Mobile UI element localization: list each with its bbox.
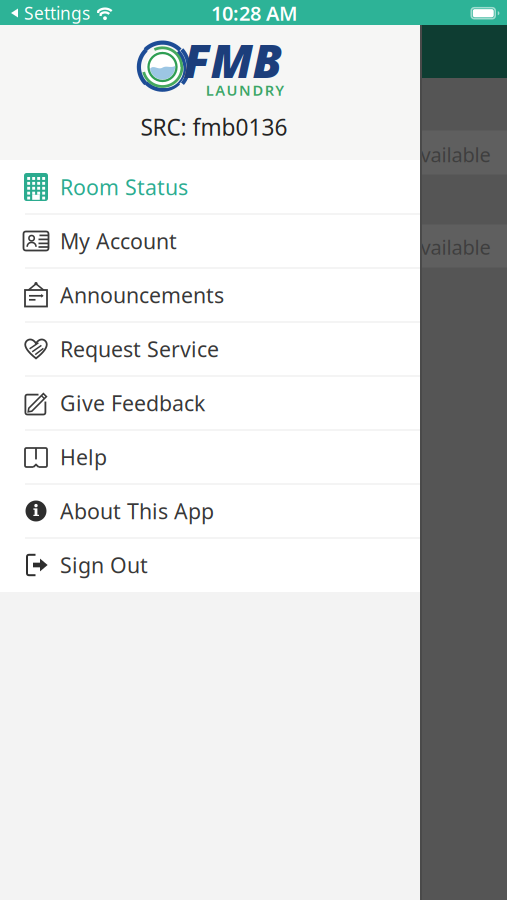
staticText: Room Status	[60, 173, 188, 201]
staticText: L	[206, 80, 214, 100]
staticText: SRC: fmb0136	[140, 112, 287, 142]
staticText: Sign Out	[60, 551, 148, 579]
button[interactable]: My Account	[0, 214, 420, 268]
button[interactable]: Room Status	[0, 160, 420, 214]
button[interactable]: Help	[0, 430, 420, 484]
staticText: Available	[407, 141, 490, 168]
staticText: About This App	[60, 497, 214, 525]
button[interactable]: Request Service	[0, 322, 420, 376]
staticText: Give Feedback	[60, 389, 205, 417]
button[interactable]: Give Feedback	[0, 376, 420, 430]
staticText: Y	[275, 80, 284, 100]
staticText: FMB	[183, 29, 282, 91]
button[interactable]: Sign Out	[0, 538, 420, 592]
button[interactable]: Close menu	[420, 25, 507, 900]
staticText: U	[227, 80, 238, 100]
staticText: Settings	[24, 1, 90, 24]
staticText: Help	[60, 443, 107, 471]
staticText: A	[215, 80, 225, 100]
staticText: 10:28 AM	[211, 0, 298, 26]
staticText: D	[252, 80, 263, 100]
staticText: N	[239, 80, 251, 100]
button[interactable]: Back to Settings	[10, 0, 116, 25]
staticText: My Account	[60, 227, 177, 255]
staticText: Request Service	[60, 335, 219, 363]
button[interactable]: Announcements	[0, 268, 420, 322]
staticText: Available	[407, 234, 490, 260]
staticText: R	[265, 80, 274, 100]
staticText: Announcements	[60, 281, 224, 309]
button[interactable]: About This App	[0, 484, 420, 538]
